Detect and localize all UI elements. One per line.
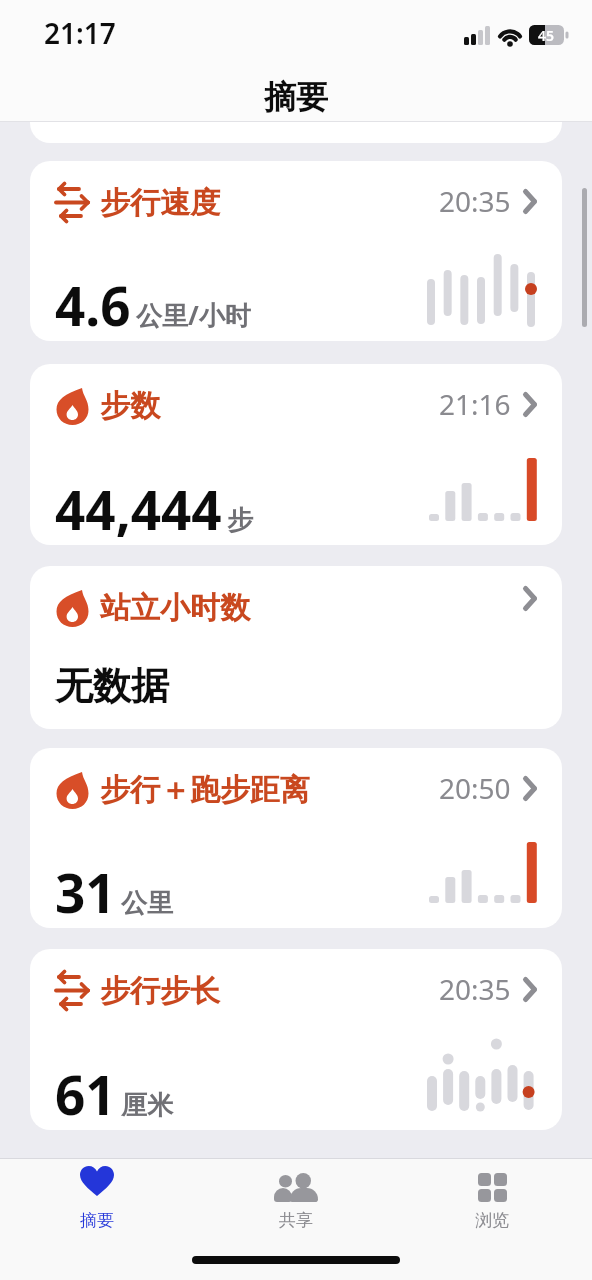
staticText: 20:50 — [439, 769, 511, 807]
button[interactable]: 步行速度 — [30, 161, 562, 341]
staticText: 20:35 — [439, 182, 511, 220]
button[interactable]: 步数 — [30, 364, 562, 545]
staticText: 61 — [55, 1058, 116, 1130]
staticText: 21:16 — [439, 385, 511, 423]
staticText: 浏览 — [475, 1210, 509, 1231]
staticText: 站立小时数 — [100, 589, 250, 627]
button[interactable]: 步行步长 — [30, 949, 562, 1130]
staticText: 步行速度 — [100, 184, 220, 222]
button[interactable]: 共享 — [246, 1163, 346, 1233]
staticText: 摘要 — [264, 77, 328, 117]
staticText: 公里/小时 — [136, 297, 251, 333]
button[interactable]: 步行＋跑步距离 — [30, 748, 562, 928]
staticText: 20:35 — [439, 970, 511, 1008]
staticText: 4.6 — [55, 269, 131, 341]
staticText: 21:17 — [44, 14, 116, 52]
staticText: 44,444 — [55, 473, 222, 545]
staticText: 共享 — [279, 1210, 313, 1231]
staticText: 公里 — [121, 887, 173, 920]
button[interactable]: 摘要 — [47, 1163, 147, 1233]
button[interactable]: 浏览 — [442, 1163, 542, 1233]
button[interactable]: 站立小时数 — [30, 566, 562, 729]
staticText: 31 — [55, 856, 116, 928]
staticText: 步数 — [100, 387, 160, 425]
staticText: 步行步长 — [100, 972, 220, 1010]
staticText: 步行＋跑步距离 — [100, 771, 310, 809]
staticText: 45 — [538, 26, 555, 45]
staticText: 无数据 — [55, 662, 169, 710]
staticText: 摘要 — [80, 1210, 114, 1231]
staticText: 步 — [227, 504, 253, 537]
staticText: 厘米 — [121, 1089, 173, 1122]
